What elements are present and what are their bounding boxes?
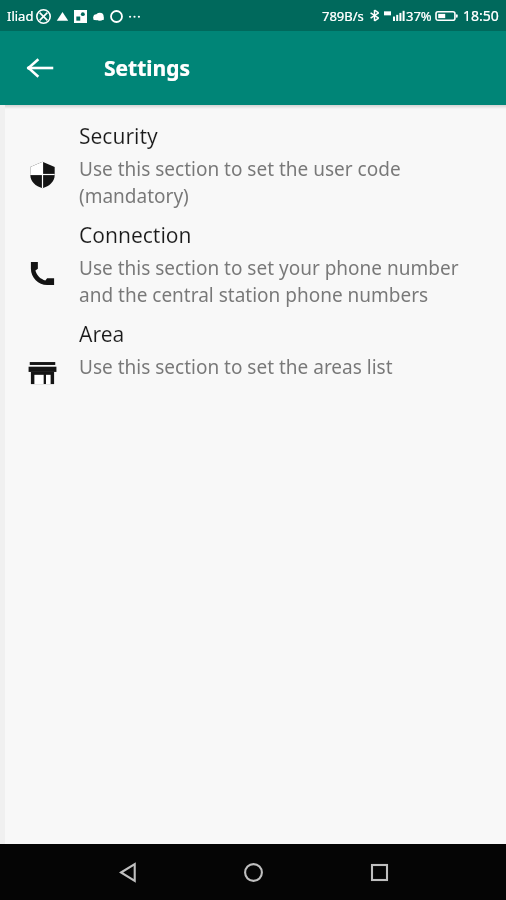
staticText: 37% [406, 7, 432, 25]
button[interactable]: Home [227, 846, 279, 898]
staticText: Use this section to set the user code (m… [79, 156, 488, 209]
staticText: Area [79, 320, 125, 349]
button[interactable]: Back [101, 846, 153, 898]
staticText: Settings [104, 54, 191, 83]
button[interactable]: Recent apps [353, 846, 405, 898]
staticText: 18:50 [463, 6, 499, 25]
staticText: Iliad [7, 7, 34, 25]
button[interactable]: Connection [0, 213, 506, 312]
staticText: Use this section to set your phone numbe… [79, 255, 488, 308]
button[interactable]: Area [0, 312, 506, 406]
staticText: Connection [79, 221, 192, 250]
staticText: Security [79, 122, 158, 151]
button[interactable]: Security [0, 114, 506, 213]
staticText: Use this section to set the areas list [79, 354, 393, 380]
button[interactable]: Back [12, 40, 68, 96]
staticText: 789B/s [322, 7, 364, 25]
